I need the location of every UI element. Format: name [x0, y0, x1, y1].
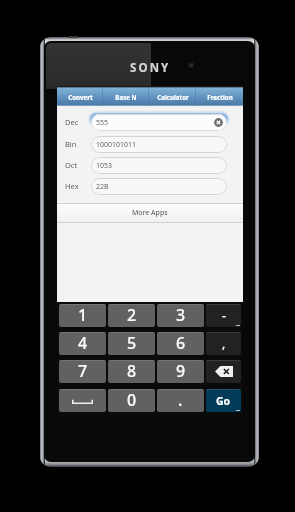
staticText: Go — [216, 394, 231, 408]
button[interactable]: 555 — [91, 114, 227, 131]
staticText: 22B — [96, 182, 109, 192]
button[interactable]: - — [206, 304, 241, 327]
button[interactable]: 0 — [108, 389, 155, 412]
staticText: 7 — [78, 360, 88, 382]
button[interactable]: 7 — [59, 360, 106, 383]
button[interactable]: 5 — [108, 332, 155, 355]
button[interactable]: , — [206, 332, 241, 355]
staticText: 4 — [78, 332, 88, 354]
staticText: . — [178, 389, 183, 411]
button[interactable]: 1053 — [91, 157, 227, 174]
staticText: 2 — [127, 304, 137, 326]
staticText: 6 — [176, 332, 186, 354]
button[interactable]: Calculator — [149, 87, 196, 106]
staticText: Fraction — [207, 93, 233, 101]
staticText: 8 — [127, 360, 137, 382]
staticText: Bin — [65, 139, 77, 149]
staticText: , — [222, 335, 226, 351]
button[interactable]: Clear text — [213, 117, 224, 128]
button[interactable]: 1 — [59, 304, 106, 327]
button[interactable]: 1000101011 — [91, 136, 227, 153]
staticText: More Apps — [132, 208, 168, 218]
button[interactable]: 6 — [157, 332, 204, 355]
button[interactable]: 8 — [108, 360, 155, 383]
button[interactable]: Backspace — [206, 360, 241, 383]
staticText: Hex — [65, 181, 79, 191]
staticText: 555 — [96, 118, 109, 128]
button[interactable]: Convert — [57, 87, 103, 106]
button[interactable]: 3 — [157, 304, 204, 327]
button[interactable]: 4 — [59, 332, 106, 355]
staticText: 1 — [78, 304, 88, 326]
button[interactable]: Base N — [103, 87, 149, 106]
staticText: 1053 — [96, 161, 113, 171]
staticText: 0 — [127, 389, 137, 411]
staticText: - — [222, 307, 226, 323]
staticText: 9 — [176, 360, 186, 382]
staticText: SONY — [130, 60, 171, 76]
staticText: Calculator — [157, 93, 189, 101]
button[interactable]: 2 — [108, 304, 155, 327]
staticText: Oct — [65, 160, 78, 170]
staticText: 5 — [127, 332, 137, 354]
staticText: Convert — [68, 93, 93, 101]
button[interactable]: More Apps — [57, 204, 243, 222]
button[interactable]: 22B — [91, 178, 227, 195]
button[interactable]: Fraction — [196, 87, 243, 106]
staticText: 3 — [176, 304, 186, 326]
button[interactable]: 9 — [157, 360, 204, 383]
button[interactable]: Space — [59, 389, 106, 412]
staticText: 1000101011 — [96, 140, 137, 150]
button[interactable]: Go — [206, 389, 241, 412]
staticText: Dec — [65, 117, 79, 127]
button[interactable]: . — [157, 389, 204, 412]
staticText: Base N — [115, 93, 137, 101]
